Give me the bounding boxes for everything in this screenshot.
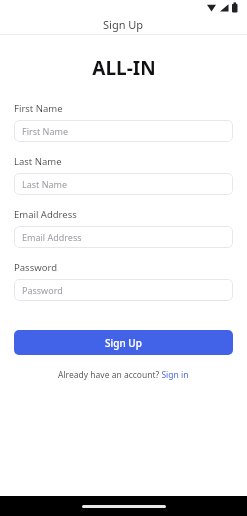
staticText: Sign Up [105, 336, 142, 350]
button[interactable]: Email Address [14, 226, 233, 248]
staticText: First Name [14, 102, 63, 115]
button[interactable]: Last Name [14, 173, 233, 195]
staticText: Last Name [14, 155, 62, 168]
button[interactable]: Sign Up [14, 330, 233, 355]
staticText: Email Address [22, 231, 82, 243]
button[interactable]: First Name [14, 120, 233, 142]
staticText: First Name [22, 125, 68, 137]
staticText: Password [22, 284, 63, 296]
button[interactable]: Password [14, 279, 233, 301]
staticText: Already have an account? Sign in [58, 369, 189, 381]
staticText: ALL-IN [92, 55, 156, 81]
staticText: Sign Up [103, 17, 144, 32]
other: Home gesture bar [82, 505, 166, 508]
staticText: Last Name [22, 178, 68, 190]
staticText: Email Address [14, 208, 77, 221]
button[interactable]: Already have an account? Sign in [58, 369, 189, 381]
staticText: Password [14, 261, 57, 274]
